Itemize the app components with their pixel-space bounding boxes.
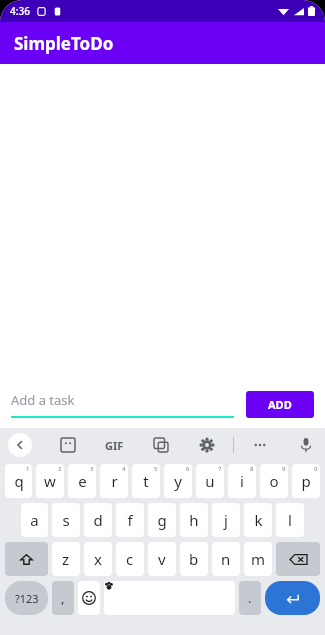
staticText: 1 xyxy=(26,465,30,473)
staticText: Add a task xyxy=(11,391,75,409)
staticText: . xyxy=(248,589,252,607)
staticText: ?123 xyxy=(15,591,39,606)
staticText: i xyxy=(240,471,244,491)
button[interactable]: ?123 xyxy=(5,581,48,615)
staticText: t xyxy=(143,471,149,491)
staticText: 2 xyxy=(58,465,62,473)
staticText: s xyxy=(62,510,70,530)
button[interactable]: a xyxy=(21,503,48,537)
staticText: n xyxy=(221,549,231,569)
button[interactable]: Enter xyxy=(265,581,320,615)
staticText: r xyxy=(111,471,118,491)
button[interactable]: More options xyxy=(251,436,269,454)
button[interactable]: p xyxy=(292,464,320,498)
button[interactable]: t xyxy=(132,464,160,498)
staticText: h xyxy=(189,510,199,530)
button[interactable]: r xyxy=(100,464,128,498)
staticText: z xyxy=(62,549,70,569)
button[interactable]: Space xyxy=(104,581,235,615)
button[interactable]: k xyxy=(244,503,272,537)
staticText: GIF xyxy=(105,438,124,453)
button[interactable]: Stickers xyxy=(59,436,77,454)
staticText: 0 xyxy=(314,465,318,473)
button[interactable]: , xyxy=(52,581,74,615)
staticText: l xyxy=(288,510,292,530)
button[interactable]: m xyxy=(244,542,272,576)
button[interactable]: Back xyxy=(8,433,32,457)
button[interactable]: Shift xyxy=(5,542,48,576)
staticText: 4:36 xyxy=(10,4,30,18)
staticText: 8 xyxy=(250,465,254,473)
staticText: u xyxy=(205,471,215,491)
staticText: a xyxy=(30,510,39,530)
staticText: p xyxy=(301,471,311,491)
button[interactable]: h xyxy=(180,503,208,537)
button[interactable]: q xyxy=(5,464,32,498)
button[interactable]: Settings xyxy=(198,436,216,454)
staticText: e xyxy=(78,471,87,491)
button[interactable]: Emoji xyxy=(78,581,100,615)
button[interactable]: e xyxy=(68,464,96,498)
staticText: SimpleToDo xyxy=(14,32,114,55)
staticText: f xyxy=(127,510,133,530)
button[interactable]: Add a task xyxy=(11,391,234,418)
staticText: 7 xyxy=(218,465,222,473)
button[interactable]: Backspace xyxy=(276,542,320,576)
staticText: , xyxy=(61,589,65,607)
button[interactable]: u xyxy=(196,464,224,498)
staticText: 9 xyxy=(282,465,286,473)
button[interactable]: s xyxy=(52,503,80,537)
button[interactable]: z xyxy=(52,542,80,576)
button[interactable]: o xyxy=(260,464,288,498)
button[interactable]: b xyxy=(180,542,208,576)
button[interactable]: i xyxy=(228,464,256,498)
staticText: d xyxy=(93,510,103,530)
button[interactable]: n xyxy=(212,542,240,576)
button[interactable]: Voice input xyxy=(297,436,315,454)
button[interactable]: j xyxy=(212,503,240,537)
button[interactable]: l xyxy=(276,503,304,537)
button[interactable]: y xyxy=(164,464,192,498)
staticText: 4 xyxy=(122,465,126,473)
button[interactable]: w xyxy=(36,464,64,498)
button[interactable]: ADD xyxy=(246,391,314,418)
staticText: 3 xyxy=(90,465,94,473)
staticText: 6 xyxy=(186,465,190,473)
staticText: c xyxy=(126,549,134,569)
staticText: y xyxy=(174,471,182,491)
button[interactable]: GIF xyxy=(105,438,124,453)
staticText: x xyxy=(94,549,102,569)
staticText: b xyxy=(189,549,199,569)
button[interactable]: c xyxy=(116,542,144,576)
button[interactable]: . xyxy=(239,581,261,615)
button[interactable]: g xyxy=(148,503,176,537)
staticText: ADD xyxy=(268,397,292,412)
staticText: o xyxy=(269,471,279,491)
staticText: 5 xyxy=(154,465,158,473)
staticText: m xyxy=(251,549,266,569)
staticText: k xyxy=(254,510,263,530)
staticText: v xyxy=(158,549,166,569)
staticText: w xyxy=(44,471,56,491)
staticText: q xyxy=(14,471,24,491)
staticText: g xyxy=(157,510,167,530)
button[interactable]: d xyxy=(84,503,112,537)
button[interactable]: Translate xyxy=(152,436,170,454)
staticText: j xyxy=(224,510,228,530)
button[interactable]: v xyxy=(148,542,176,576)
button[interactable]: f xyxy=(116,503,144,537)
button[interactable]: x xyxy=(84,542,112,576)
